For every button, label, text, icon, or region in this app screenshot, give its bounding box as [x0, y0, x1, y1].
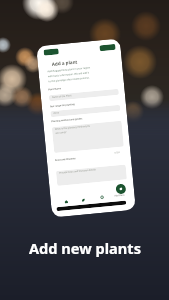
button[interactable]: Add Plant	[115, 183, 126, 194]
staticText: Pests and Diseases	[55, 157, 76, 162]
button[interactable]: Name of the Plant	[49, 89, 119, 101]
button[interactable]: Zone	[50, 105, 121, 117]
button[interactable]: Home	[61, 197, 70, 206]
staticText: Add a plant	[51, 58, 78, 67]
staticText: What is the planting method you are usin…	[55, 124, 93, 134]
button[interactable]: What is the planting method you are usin…	[52, 121, 124, 153]
staticText: Planting method and guides	[51, 117, 83, 123]
button[interactable]: Settings	[97, 192, 106, 201]
button[interactable]: Plants	[78, 195, 87, 204]
button[interactable]: Provide Pests and Diseases details	[56, 164, 127, 186]
staticText: Add/Suggest New plant in your region wit…	[47, 65, 91, 82]
staticText: 0/250	[114, 151, 121, 154]
staticText: Plant Name	[48, 87, 61, 91]
staticText: Name of the Plant	[52, 92, 90, 99]
staticText: Provide Pests and Diseases details	[59, 168, 97, 175]
staticText: Zone	[53, 108, 91, 115]
staticText: Geo range for planting	[50, 103, 75, 108]
staticText: Add new plants	[29, 238, 141, 258]
staticText: Add Plant	[114, 194, 125, 198]
